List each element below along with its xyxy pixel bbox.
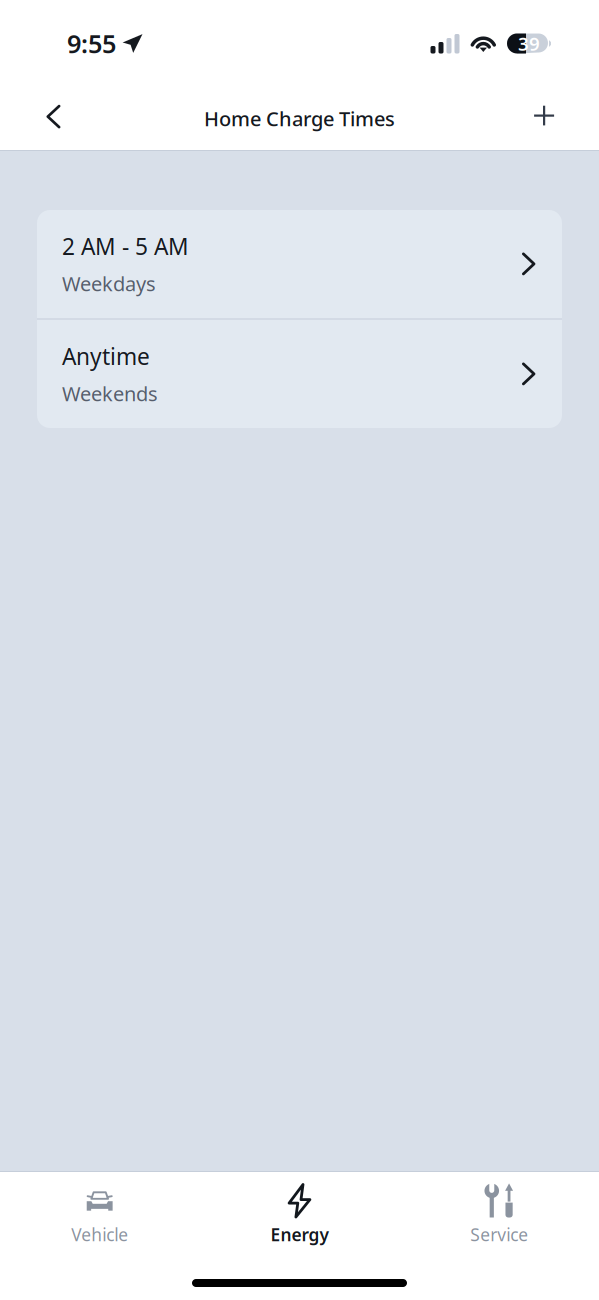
- staticText: Weekends: [62, 380, 158, 407]
- button[interactable]: Energy: [200, 1183, 399, 1246]
- staticText: 39: [518, 31, 540, 56]
- staticText: Energy: [270, 1223, 328, 1246]
- button[interactable]: Back: [31, 96, 75, 140]
- staticText: 2 AM - 5 AM: [62, 231, 189, 261]
- button[interactable]: Service: [399, 1183, 599, 1246]
- button[interactable]: Vehicle: [0, 1183, 200, 1246]
- staticText: Vehicle: [71, 1223, 128, 1246]
- staticText: Service: [470, 1223, 528, 1246]
- button[interactable]: 2 AM - 5 AM: [37, 210, 562, 318]
- button[interactable]: Anytime: [37, 320, 562, 428]
- staticText: 9:55: [67, 27, 116, 60]
- staticText: Home Charge Times: [204, 105, 395, 132]
- staticText: Weekdays: [62, 270, 156, 297]
- button[interactable]: Add schedule: [523, 96, 567, 140]
- staticText: Anytime: [62, 341, 150, 371]
